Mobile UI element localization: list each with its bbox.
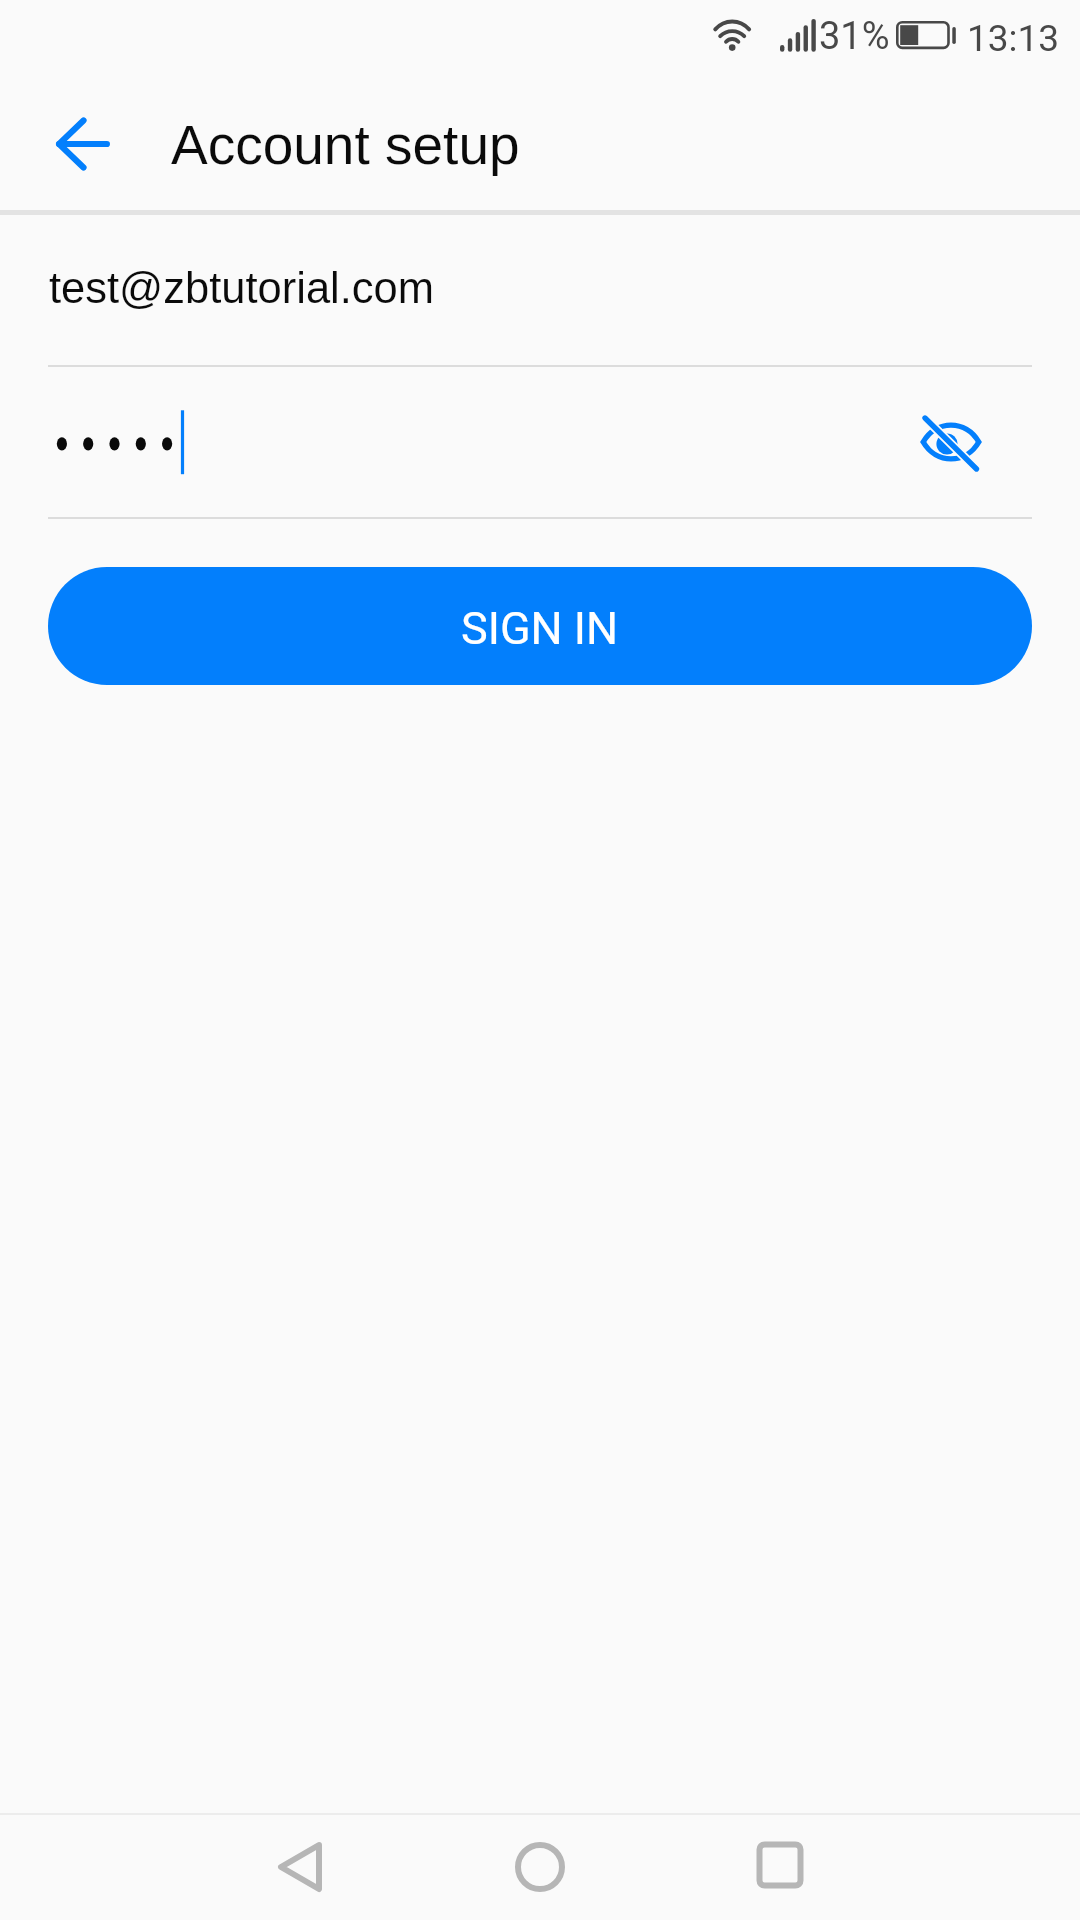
- button[interactable]: Password: [48, 367, 878, 519]
- staticText: SIGN IN: [461, 602, 619, 655]
- button[interactable]: Home: [480, 1813, 600, 1920]
- staticText: test@zbtutorial.com: [49, 264, 435, 313]
- button[interactable]: Recent apps: [720, 1813, 840, 1920]
- button[interactable]: Navigate up: [28, 92, 134, 198]
- staticText: Account setup: [171, 114, 520, 175]
- button[interactable]: test@zbtutorial.com: [48, 240, 1032, 367]
- button[interactable]: Show password: [911, 402, 991, 482]
- button[interactable]: SIGN IN: [48, 567, 1032, 685]
- button[interactable]: Back: [240, 1813, 360, 1920]
- staticText: 13:13: [967, 17, 1060, 60]
- staticText: 31%: [819, 14, 890, 59]
